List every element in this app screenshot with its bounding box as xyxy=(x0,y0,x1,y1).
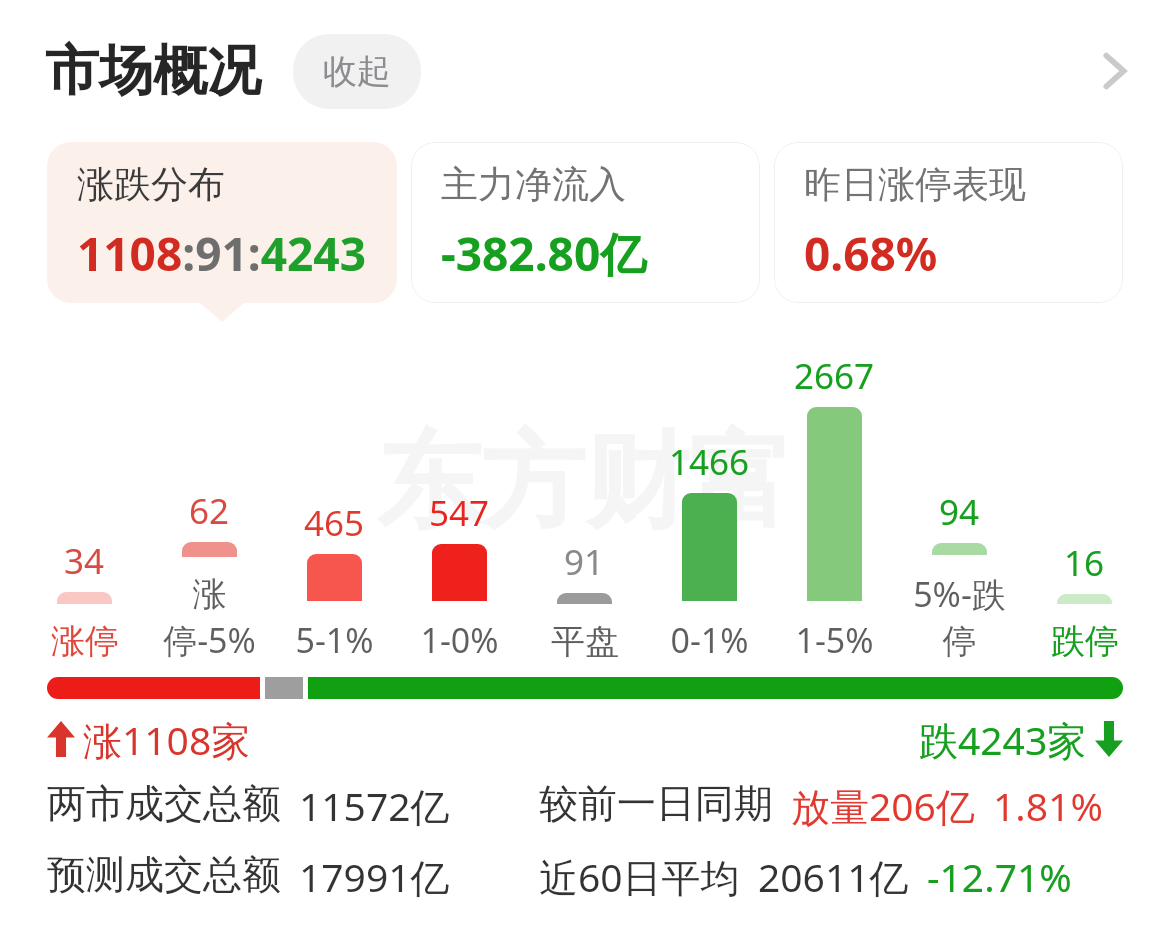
staticText: 涨停-5% xyxy=(147,573,272,663)
staticText: 跌停 xyxy=(1051,620,1119,663)
staticText: 收起 xyxy=(323,50,391,93)
staticText: 涨停 xyxy=(51,620,119,663)
staticText: 0.68% xyxy=(804,222,938,285)
staticText: 0-1% xyxy=(670,617,749,663)
staticText: 昨日涨停表现 xyxy=(804,161,1026,208)
staticText: 1108:91:4243 xyxy=(77,222,366,285)
staticText: 5-1% xyxy=(295,617,374,663)
staticText: 465 xyxy=(304,499,365,547)
staticText: 94 xyxy=(939,488,980,536)
staticText: 近60日平均 xyxy=(539,850,740,903)
button[interactable]: 昨日涨停表现 xyxy=(774,142,1123,303)
staticText: 1466 xyxy=(669,438,750,486)
staticText: 预测成交总额 xyxy=(47,850,281,899)
staticText: 34 xyxy=(64,537,105,585)
staticText: 涨跌分布 xyxy=(77,161,225,208)
staticText: 主力净流入 xyxy=(441,161,626,208)
staticText: 17991亿 xyxy=(299,850,450,903)
staticText: 放量206亿 xyxy=(791,779,975,832)
staticText: 市场概况 xyxy=(45,37,261,105)
staticText: 20611亿 xyxy=(758,850,909,903)
staticText: 5%-跌停 xyxy=(897,571,1022,663)
staticText: 较前一日同期 xyxy=(539,779,773,828)
staticText: -12.71% xyxy=(927,850,1072,903)
button[interactable]: 主力净流入 xyxy=(411,142,760,303)
staticText: 16 xyxy=(1064,539,1105,587)
staticText: 涨1108家 xyxy=(83,713,251,766)
staticText: 62 xyxy=(189,487,230,535)
staticText: 2667 xyxy=(794,352,875,400)
staticText: 平盘 xyxy=(551,620,619,663)
button[interactable]: 收起 xyxy=(293,34,421,109)
staticText: -382.80亿 xyxy=(441,222,647,285)
staticText: 1.81% xyxy=(993,779,1103,832)
staticText: 跌4243家 xyxy=(919,713,1087,766)
staticText: 两市成交总额 xyxy=(47,779,281,828)
staticText: 1-0% xyxy=(420,617,499,663)
staticText: 东方财富 xyxy=(377,417,793,548)
staticText: 547 xyxy=(429,489,490,537)
staticText: 91 xyxy=(564,538,605,586)
button[interactable]: 涨跌分布 xyxy=(47,142,397,303)
staticText: 11572亿 xyxy=(299,779,450,832)
button[interactable]: 展开市场概况 xyxy=(1071,28,1157,114)
staticText: 1-5% xyxy=(795,617,874,663)
